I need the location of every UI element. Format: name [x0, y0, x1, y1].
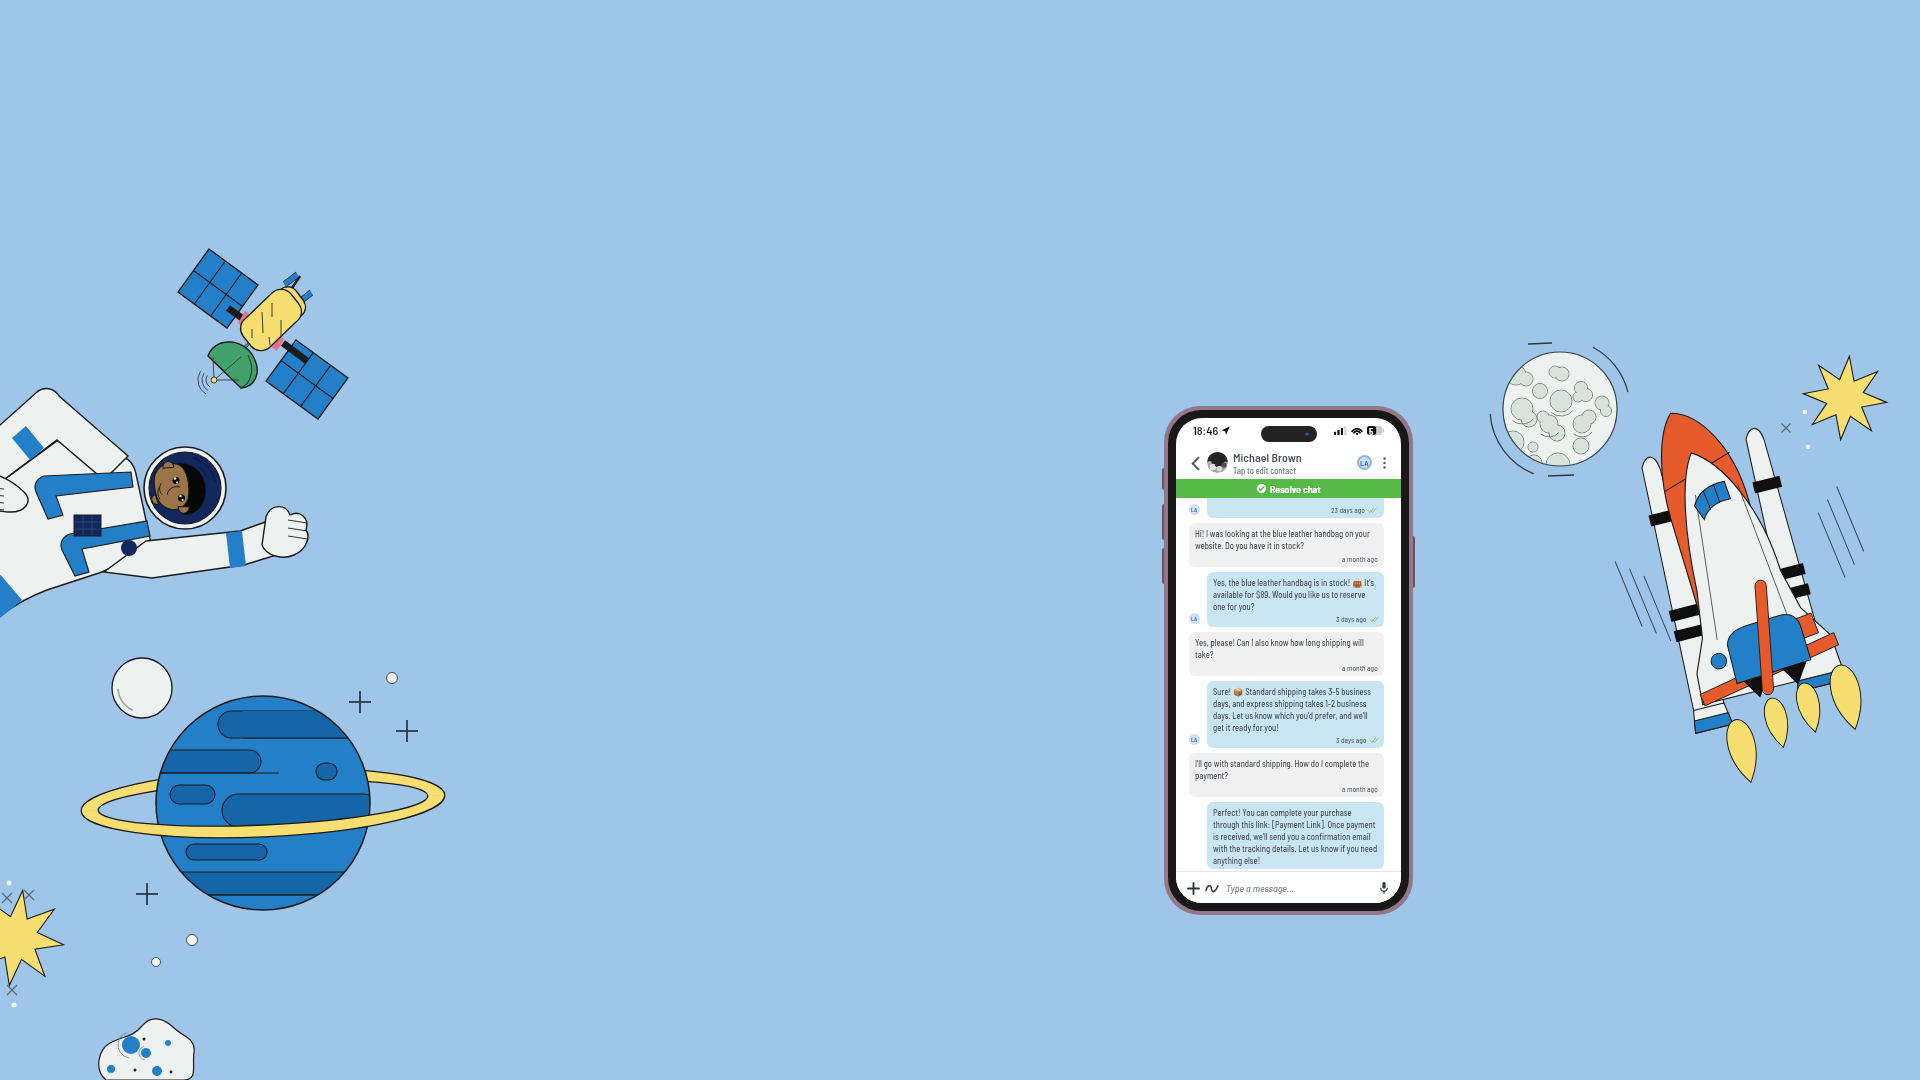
button[interactable]: Michael Brown — [1233, 450, 1357, 475]
staticText: Resolve chat — [1270, 483, 1321, 495]
staticText: Yes, the blue leather handbag is in stoc… — [1213, 577, 1378, 612]
button[interactable]: Yes, please! Can I also know how long sh… — [1189, 632, 1384, 676]
staticText: Type a message... — [1226, 882, 1376, 894]
staticText: Perfect! You can complete your purchase … — [1213, 807, 1378, 866]
button[interactable]: I'll go with standard shipping. How do I… — [1189, 753, 1384, 797]
staticText: LA — [1191, 506, 1198, 513]
staticText: Michael Brown — [1233, 450, 1302, 464]
staticText: Yes, please! Can I also know how long sh… — [1195, 637, 1378, 660]
staticText: LA — [1191, 615, 1198, 622]
button[interactable]: Hi! I was looking at the blue leather ha… — [1189, 523, 1384, 567]
button[interactable]: Attach — [1185, 880, 1201, 896]
staticText: Sure! 📦 Standard shipping takes 3-5 busi… — [1213, 686, 1378, 733]
staticText: 5 — [1369, 426, 1374, 435]
button[interactable]: Quick replies — [1204, 880, 1220, 896]
button[interactable]: Record voice message — [1376, 880, 1392, 896]
button[interactable]: Perfect! You can complete your purchase … — [1207, 802, 1384, 869]
button[interactable]: Yes, the blue leather handbag is in stoc… — [1207, 572, 1384, 627]
staticText: a month ago — [1342, 664, 1378, 673]
button[interactable]: Sure! 📦 Standard shipping takes 3-5 busi… — [1207, 681, 1384, 748]
staticText: 18:46 — [1193, 423, 1219, 437]
staticText: 3 days ago — [1336, 615, 1367, 624]
button[interactable]: Back — [1187, 455, 1203, 471]
staticText: I'll go with standard shipping. How do I… — [1195, 758, 1378, 781]
staticText: Tap to edit contact — [1233, 465, 1296, 475]
staticText: 3 days ago — [1336, 736, 1367, 745]
staticText: LA — [1191, 736, 1198, 743]
staticText: a month ago — [1342, 555, 1378, 564]
button[interactable]: LA — [1357, 455, 1372, 470]
staticText: 23 days ago — [1331, 506, 1365, 515]
button[interactable]: More options — [1377, 456, 1391, 470]
staticText: LA — [1360, 458, 1369, 468]
button[interactable]: Resolve chat — [1176, 479, 1401, 498]
staticText: Hi! I was looking at the blue leather ha… — [1195, 528, 1378, 551]
button[interactable]: 23 days ago — [1207, 498, 1384, 518]
staticText: a month ago — [1342, 785, 1378, 794]
